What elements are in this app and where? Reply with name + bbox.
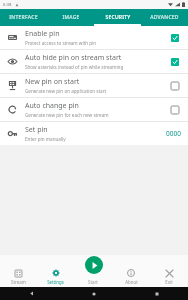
- staticText: Set pin: [25, 125, 48, 135]
- staticText: 0000: [166, 129, 181, 138]
- button[interactable]: IMAGE: [47, 9, 94, 26]
- staticText: IMAGE: [62, 14, 80, 21]
- staticText: Generate new pin on application start: [25, 88, 107, 94]
- button[interactable]: Unchecked: [169, 104, 181, 116]
- staticText: Generate new pin for each new stream: [25, 112, 109, 118]
- staticText: SECURITY: [105, 14, 131, 21]
- staticText: Exit: [165, 279, 173, 285]
- staticText: Auto change pin: [25, 101, 79, 111]
- staticText: 6:38: [3, 2, 12, 8]
- button[interactable]: Stream: [0, 267, 37, 287]
- button[interactable]: About: [112, 267, 150, 287]
- button[interactable]: Unchecked: [169, 80, 181, 92]
- button[interactable]: Auto change pin: [0, 98, 188, 121]
- button[interactable]: Checked: [169, 32, 181, 44]
- staticText: Protect access to stream with pin: [25, 40, 97, 46]
- button[interactable]: Enable pin: [0, 26, 188, 49]
- button[interactable]: New pin on start: [0, 74, 188, 97]
- staticText: Enter pin manually: [25, 136, 66, 142]
- button[interactable]: Settings: [37, 267, 74, 287]
- button[interactable]: Start: [74, 267, 112, 287]
- staticText: INTERFACE: [9, 14, 38, 21]
- staticText: New pin on start: [25, 77, 80, 87]
- button[interactable]: Start stream: [85, 256, 103, 274]
- button[interactable]: SECURITY: [94, 9, 141, 26]
- staticText: Settings: [47, 279, 64, 285]
- other: Home: [92, 292, 96, 296]
- staticText: About: [125, 279, 138, 285]
- staticText: Start: [88, 279, 98, 285]
- button[interactable]: ADVANCED: [141, 9, 188, 26]
- staticText: ADVANCED: [150, 14, 179, 21]
- button[interactable]: Auto hide pin on stream start: [0, 50, 188, 73]
- button[interactable]: INTERFACE: [0, 9, 47, 26]
- button[interactable]: Set pin: [0, 122, 188, 145]
- other: Recents: [155, 292, 159, 296]
- staticText: Auto hide pin on stream start: [25, 53, 122, 63]
- staticText: Enable pin: [25, 29, 60, 39]
- button[interactable]: Exit: [150, 267, 188, 287]
- staticText: Show asterisks instead of pin while stre…: [25, 64, 124, 70]
- button[interactable]: Checked: [169, 56, 181, 68]
- other: Back: [29, 291, 34, 296]
- staticText: Stream: [11, 279, 26, 285]
